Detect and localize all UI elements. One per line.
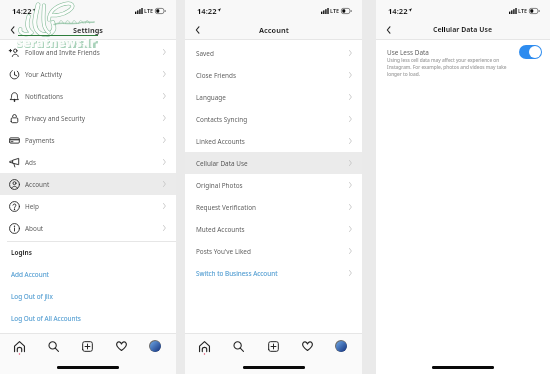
button[interactable]: Use Less Data toggle <box>519 45 542 59</box>
staticText: Muted Accounts <box>196 225 245 234</box>
button[interactable]: Muted Accounts <box>185 218 362 240</box>
staticText: Cellular Data Use <box>433 25 493 34</box>
staticText: Linked Accounts <box>196 137 245 146</box>
staticText: Switch to Business Account <box>196 269 278 278</box>
staticText: Language <box>196 93 226 102</box>
button[interactable]: Posts You've Liked <box>185 240 362 262</box>
button[interactable]: Cellular Data Use <box>185 152 362 174</box>
staticText: Account <box>259 25 289 35</box>
button[interactable]: Follow and Invite Friends <box>0 41 176 63</box>
staticText: Privacy and Security <box>25 114 86 123</box>
staticText: seratnews.ir <box>17 35 99 52</box>
staticText: Contacts Syncing <box>196 115 248 124</box>
button[interactable]: Home <box>11 338 27 354</box>
button[interactable]: Profile <box>147 338 163 354</box>
button[interactable]: About <box>0 217 176 239</box>
staticText: 14:22 <box>388 6 408 16</box>
staticText: Cellular Data Use <box>196 159 248 168</box>
staticText: Add Account <box>11 270 49 279</box>
button[interactable]: Payments <box>0 129 176 151</box>
button[interactable]: Log Out of jlix <box>0 285 176 307</box>
staticText: Logins <box>11 248 32 257</box>
staticText: Request Verification <box>196 203 256 212</box>
button[interactable]: Back <box>6 24 18 36</box>
staticText: Help <box>25 202 39 211</box>
staticText: Follow and Invite Friends <box>25 48 100 57</box>
staticText: LTE <box>518 7 528 14</box>
button[interactable]: Contacts Syncing <box>185 108 362 130</box>
staticText: Your Activity <box>25 70 62 79</box>
button[interactable]: Language <box>185 86 362 108</box>
button[interactable]: Privacy and Security <box>0 107 176 129</box>
staticText: LTE <box>330 7 340 14</box>
staticText: Use Less Data <box>387 48 429 57</box>
button[interactable]: Log Out of All Accounts <box>0 307 176 329</box>
staticText: Using less cell data may affect your exp… <box>387 57 507 78</box>
button[interactable]: Home <box>196 338 212 354</box>
button[interactable]: Request Verification <box>185 196 362 218</box>
staticText: seratnews.ir <box>17 35 96 51</box>
button[interactable]: Search <box>230 338 246 354</box>
staticText: Original Photos <box>196 181 243 190</box>
staticText: 14:22 <box>197 6 217 16</box>
staticText: About <box>25 224 44 233</box>
button[interactable]: Account <box>0 173 176 195</box>
button[interactable]: Back <box>191 24 203 36</box>
button[interactable]: Switch to Business Account <box>185 262 362 284</box>
staticText: LTE <box>144 7 154 14</box>
button[interactable]: Your Activity <box>0 63 176 85</box>
button[interactable]: Ads <box>0 151 176 173</box>
staticText: Settings <box>73 25 103 35</box>
staticText: Notifications <box>25 92 64 101</box>
staticText: Posts You've Liked <box>196 247 251 256</box>
button[interactable]: Linked Accounts <box>185 130 362 152</box>
button[interactable]: New post <box>265 338 281 354</box>
staticText: Log Out of All Accounts <box>11 314 81 323</box>
button[interactable]: Close Friends <box>185 64 362 86</box>
button[interactable]: Search <box>45 338 61 354</box>
staticText: 14:22 <box>12 6 32 16</box>
button[interactable]: Add Account <box>0 263 176 285</box>
staticText: Close Friends <box>196 71 237 80</box>
button[interactable]: Activity <box>113 338 129 354</box>
button[interactable]: Notifications <box>0 85 176 107</box>
staticText: Account <box>25 180 50 189</box>
button[interactable]: Saved <box>185 42 362 64</box>
button[interactable]: Activity <box>299 338 315 354</box>
button[interactable]: Original Photos <box>185 174 362 196</box>
staticText: Ads <box>25 158 37 167</box>
staticText: Log Out of jlix <box>11 292 53 301</box>
staticText: Saved <box>196 49 214 58</box>
button[interactable]: Back <box>382 24 394 36</box>
button[interactable]: Help <box>0 195 176 217</box>
staticText: Payments <box>25 136 55 145</box>
button[interactable]: New post <box>79 338 95 354</box>
button[interactable]: Profile <box>333 338 349 354</box>
